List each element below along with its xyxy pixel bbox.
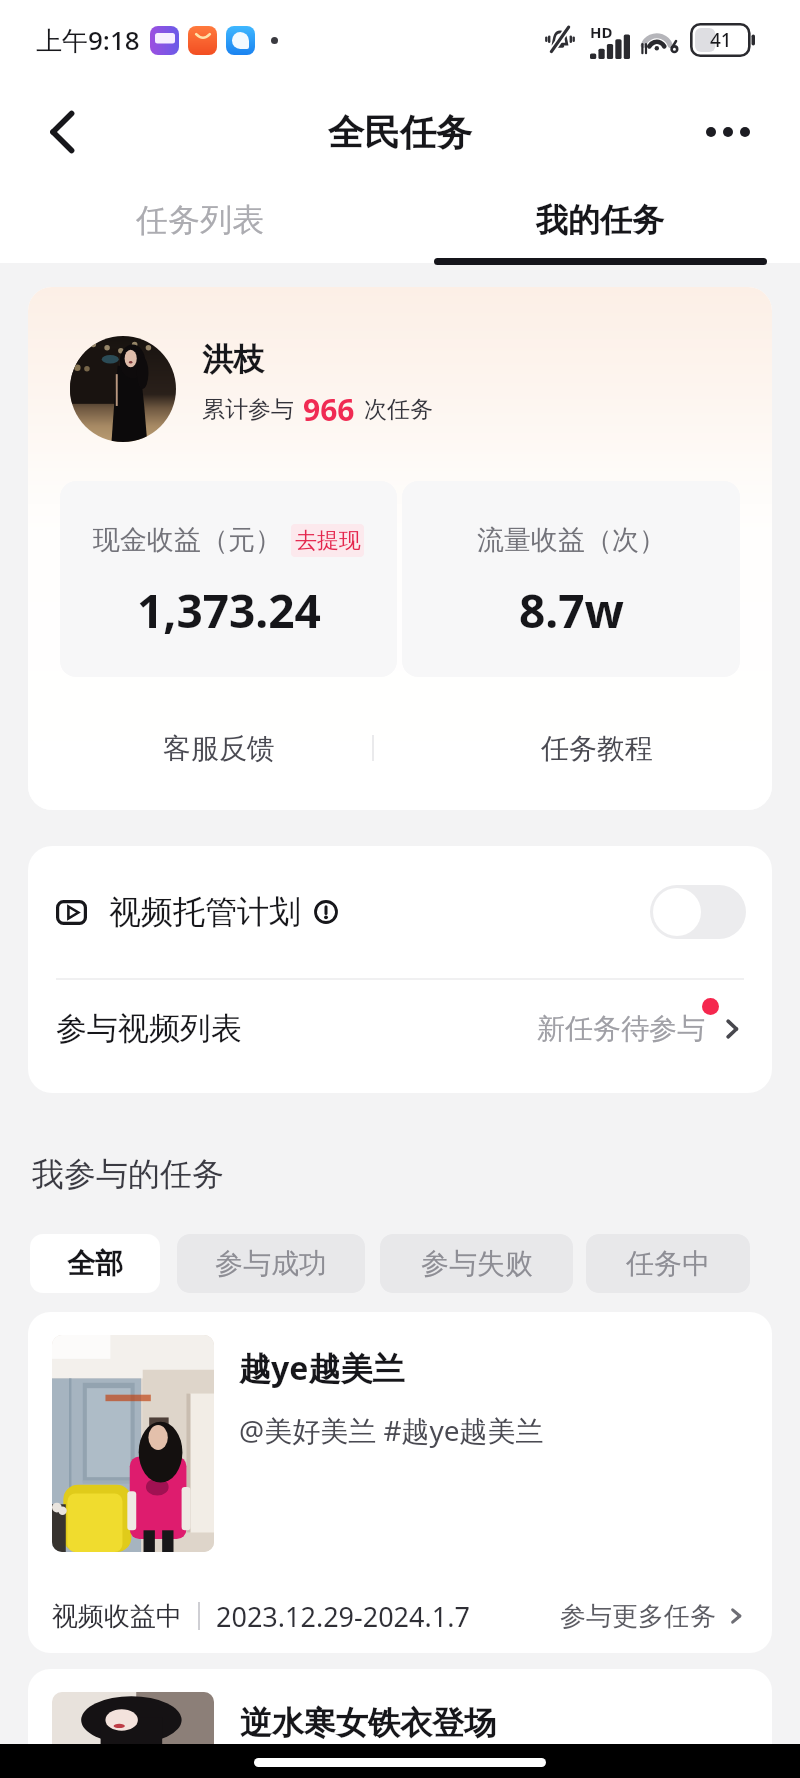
button[interactable]: 我的任务	[400, 184, 800, 256]
staticText: 41	[710, 27, 732, 53]
button[interactable]: 任务中	[586, 1234, 750, 1293]
button[interactable]: 客服反馈	[28, 711, 372, 785]
staticText: 任务中	[626, 1246, 710, 1281]
staticText: 洪枝	[202, 340, 264, 379]
staticText: 参与成功	[215, 1246, 327, 1281]
staticText: HD	[590, 22, 613, 42]
staticText: 去提现	[295, 527, 361, 555]
staticText: @美好美兰 #越ye越美兰	[239, 1411, 544, 1449]
staticText: 逆水寒女铁衣登场	[240, 1703, 496, 1743]
staticText: 参与更多任务	[560, 1600, 716, 1633]
button[interactable]: 流量收益（次）	[402, 481, 740, 677]
staticText: 我参与的任务	[32, 1154, 224, 1194]
button[interactable]: 逆水寒女铁衣登场	[28, 1669, 772, 1778]
staticText: 任务教程	[541, 731, 653, 766]
button[interactable]: More options	[697, 101, 759, 163]
staticText: 客服反馈	[163, 731, 275, 766]
staticText: 流量收益（次）	[477, 523, 666, 557]
staticText: 1,373.24	[137, 579, 321, 642]
staticText: 参与失败	[421, 1246, 533, 1281]
staticText: 8.7w	[519, 579, 624, 642]
staticText: 966	[303, 389, 355, 430]
staticText: 2023.12.29-2024.1.7	[216, 1598, 470, 1635]
staticText: 参与视频列表	[56, 1009, 242, 1048]
staticText: 越ye越美兰	[239, 1346, 405, 1390]
staticText: 视频收益中	[52, 1600, 182, 1633]
staticText: 全部	[67, 1246, 123, 1281]
button[interactable]: 参与视频列表	[28, 980, 772, 1093]
staticText: 累计参与	[202, 395, 294, 424]
staticText: 任务列表	[136, 200, 264, 240]
button[interactable]: 任务列表	[0, 184, 400, 256]
staticText: 现金收益（元）	[93, 523, 282, 557]
button[interactable]: 任务教程	[374, 711, 772, 785]
button[interactable]: Back	[32, 102, 92, 162]
button[interactable]: Toggle video hosting plan	[650, 885, 746, 939]
button[interactable]: 现金收益（元）	[60, 481, 397, 677]
staticText: 新任务待参与	[537, 1011, 705, 1046]
button[interactable]: 参与成功	[177, 1234, 365, 1293]
staticText: 全民任务	[328, 110, 472, 155]
button[interactable]: 全部	[30, 1234, 160, 1293]
staticText: 我的任务	[536, 200, 664, 240]
staticText: 视频托管计划	[109, 892, 301, 932]
button[interactable]: 参与失败	[380, 1234, 573, 1293]
button[interactable]: 越ye越美兰	[28, 1312, 772, 1653]
staticText: 次任务	[364, 395, 433, 424]
button[interactable]: 视频托管计划	[28, 846, 772, 978]
staticText: 上午9:18	[36, 22, 140, 58]
